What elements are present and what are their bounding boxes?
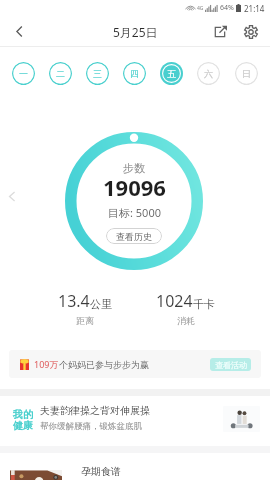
button[interactable]: 查看活动 [210,358,251,371]
staticText: 1024 [156,290,193,312]
staticText: 消耗 [177,315,195,326]
button[interactable]: Share [207,18,234,45]
button[interactable]: 日 [235,62,258,85]
staticText: 64% [220,3,234,13]
staticText: 13.4 [58,290,90,312]
staticText: 5月25日 [113,24,158,40]
staticText: 19096 [103,172,166,202]
staticText: 个妈妈已参与步步为赢 [59,359,149,370]
staticText: 五 [167,68,176,79]
staticText: 四 [130,68,139,79]
staticText: 公里 [90,297,112,311]
staticText: 我的 [13,408,33,421]
staticText: 21:14 [244,3,265,14]
staticText: 帮你缓解腰痛，锻炼盆底肌 [40,421,142,432]
staticText: 距离 [76,315,94,326]
button[interactable]: 13.4 [40,290,130,326]
staticText: 4G [197,5,204,12]
staticText: 二 [56,68,65,79]
button[interactable]: Back [4,16,34,46]
button[interactable]: 109万 [9,350,261,378]
button[interactable]: 二 [49,62,72,85]
staticText: 夫妻韵律操之背对伸展操 [40,404,150,417]
button[interactable]: 一 [12,62,35,85]
button[interactable]: 我的 [0,396,270,444]
staticText: 一 [19,68,28,79]
button[interactable]: 查看历史 [106,228,162,244]
button[interactable]: 三 [86,62,109,85]
staticText: 孕期食谱 [81,465,121,478]
staticText: 步数 [123,161,145,175]
staticText: 查看活动 [215,360,247,370]
staticText: 日 [242,68,251,79]
button[interactable]: 孕期食谱 [0,453,270,480]
staticText: 目标: 5000 [108,205,161,220]
button[interactable]: 五 [160,62,183,85]
button[interactable]: 1024 [140,290,230,326]
button[interactable]: 四 [123,62,146,85]
staticText: 查看历史 [116,231,152,242]
button[interactable]: Settings [237,18,264,45]
staticText: 千卡 [193,297,215,311]
button[interactable]: 六 [197,62,220,85]
staticText: 三 [93,68,102,79]
staticText: 109万 [34,358,59,370]
button[interactable]: Previous day [0,185,22,207]
staticText: 健康 [13,419,33,432]
staticText: 六 [204,68,213,79]
